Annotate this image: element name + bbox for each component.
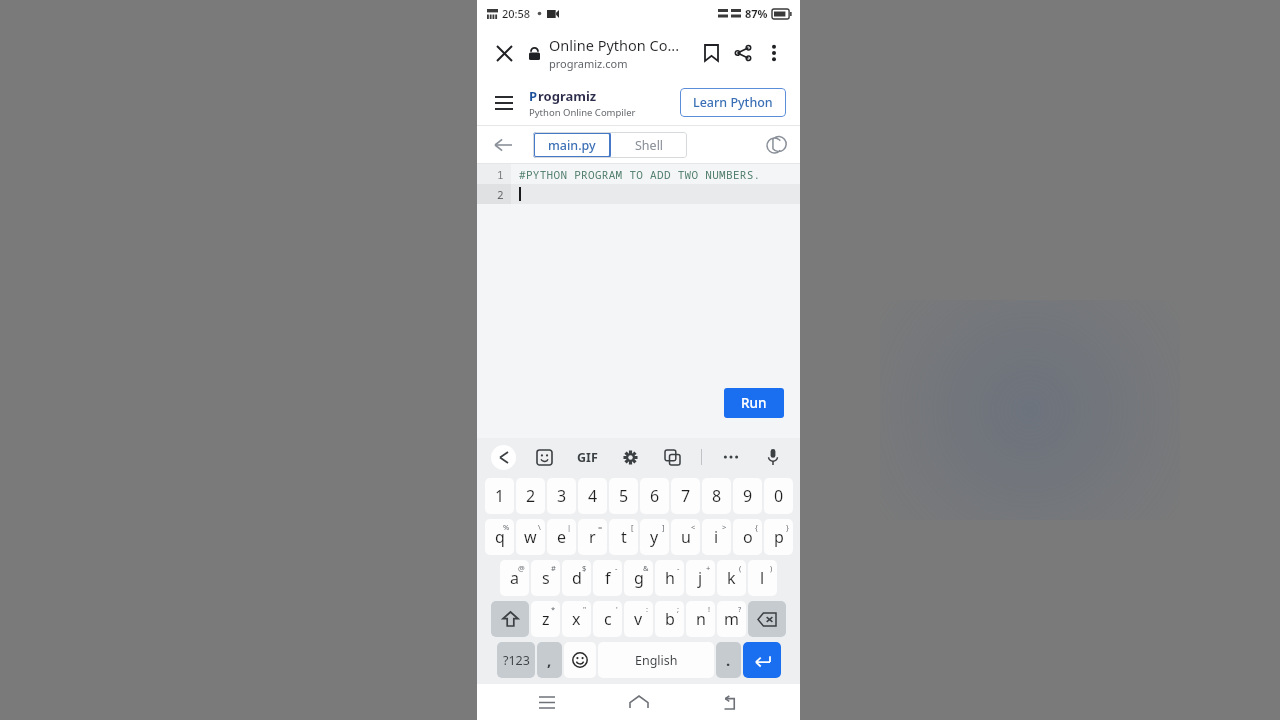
- staticText: @: [518, 563, 525, 573]
- staticText: 9: [743, 485, 753, 507]
- button[interactable]: c: [593, 601, 622, 637]
- button[interactable]: i: [702, 519, 731, 555]
- button[interactable]: Bookmark: [696, 38, 726, 68]
- button[interactable]: o: [733, 519, 762, 555]
- staticText: 6: [650, 485, 660, 507]
- button[interactable]: Stickers: [531, 444, 557, 470]
- button[interactable]: Shift: [491, 601, 529, 637]
- button[interactable]: Shell: [611, 132, 687, 158]
- staticText: Run: [741, 394, 767, 412]
- button[interactable]: English: [598, 642, 714, 678]
- staticText: b: [665, 608, 675, 630]
- button[interactable]: x: [562, 601, 591, 637]
- button[interactable]: m: [717, 601, 746, 637]
- staticText: #: [551, 563, 556, 573]
- staticText: h: [665, 567, 675, 589]
- button[interactable]: y: [640, 519, 669, 555]
- button[interactable]: 6: [640, 478, 669, 514]
- button[interactable]: 2: [516, 478, 545, 514]
- staticText: z: [542, 608, 550, 630]
- button[interactable]: Backspace: [748, 601, 786, 637]
- staticText: |: [567, 522, 572, 532]
- staticText: [: [631, 522, 634, 532]
- button[interactable]: More: [718, 444, 744, 470]
- button[interactable]: Dark mode: [760, 131, 788, 159]
- staticText: Shell: [635, 137, 664, 154]
- staticText: v: [634, 608, 643, 630]
- button[interactable]: d: [562, 560, 591, 596]
- button[interactable]: 8: [702, 478, 731, 514]
- staticText: g: [634, 567, 644, 589]
- button[interactable]: f: [593, 560, 622, 596]
- button[interactable]: h: [655, 560, 684, 596]
- staticText: ?: [738, 604, 742, 614]
- staticText: Learn Python: [693, 94, 773, 111]
- button[interactable]: Close: [489, 38, 519, 68]
- button[interactable]: Translate: [659, 444, 685, 470]
- button[interactable]: s: [531, 560, 560, 596]
- staticText: =: [598, 522, 603, 532]
- button[interactable]: p: [764, 519, 793, 555]
- staticText: *: [551, 604, 556, 614]
- button[interactable]: ?123: [497, 642, 535, 678]
- button[interactable]: e: [547, 519, 576, 555]
- staticText: p: [774, 526, 784, 548]
- button[interactable]: Settings: [617, 444, 643, 470]
- button[interactable]: main.py: [533, 132, 611, 158]
- button[interactable]: l: [748, 560, 777, 596]
- button[interactable]: z: [531, 601, 560, 637]
- staticText: ': [616, 604, 618, 614]
- button[interactable]: u: [671, 519, 700, 555]
- button[interactable]: k: [717, 560, 746, 596]
- button[interactable]: g: [624, 560, 653, 596]
- staticText: 1: [497, 167, 504, 182]
- button[interactable]: n: [686, 601, 715, 637]
- button[interactable]: 0: [764, 478, 793, 514]
- staticText: 7: [681, 485, 691, 507]
- button[interactable]: w: [516, 519, 545, 555]
- staticText: k: [727, 567, 736, 589]
- staticText: Online Python Co...: [549, 35, 680, 55]
- button[interactable]: 3: [547, 478, 576, 514]
- staticText: 0: [774, 485, 784, 507]
- button[interactable]: Share: [728, 38, 758, 68]
- staticText: 8: [712, 485, 722, 507]
- button[interactable]: ,: [537, 642, 562, 678]
- staticText: u: [681, 526, 691, 548]
- button[interactable]: Back: [709, 684, 751, 720]
- button[interactable]: b: [655, 601, 684, 637]
- button[interactable]: More options: [760, 39, 788, 67]
- button[interactable]: Back: [489, 131, 517, 159]
- button[interactable]: Emoji: [564, 642, 596, 678]
- button[interactable]: Home: [618, 684, 660, 720]
- button[interactable]: 1: [485, 478, 514, 514]
- button[interactable]: GIF: [572, 444, 602, 470]
- button[interactable]: Enter: [743, 642, 781, 678]
- button[interactable]: r: [578, 519, 607, 555]
- button[interactable]: Recent apps: [526, 684, 568, 720]
- button[interactable]: a: [500, 560, 529, 596]
- button[interactable]: t: [609, 519, 638, 555]
- button[interactable]: Run: [724, 388, 784, 418]
- staticText: l: [760, 567, 765, 589]
- staticText: n: [696, 608, 706, 630]
- button[interactable]: .: [716, 642, 741, 678]
- button[interactable]: Menu: [491, 90, 517, 116]
- button[interactable]: v: [624, 601, 653, 637]
- button[interactable]: 9: [733, 478, 762, 514]
- button[interactable]: Voice input: [760, 444, 786, 470]
- staticText: 4: [588, 485, 598, 507]
- button[interactable]: 4: [578, 478, 607, 514]
- button[interactable]: q: [485, 519, 514, 555]
- button[interactable]: Expand toolbar: [491, 445, 516, 470]
- staticText: P: [529, 87, 538, 105]
- staticText: r: [589, 526, 596, 548]
- button[interactable]: Learn Python: [680, 88, 786, 117]
- button[interactable]: 7: [671, 478, 700, 514]
- staticText: ]: [662, 522, 665, 532]
- staticText: a: [510, 567, 519, 589]
- button[interactable]: j: [686, 560, 715, 596]
- button[interactable]: 5: [609, 478, 638, 514]
- staticText: q: [495, 526, 505, 548]
- staticText: 2: [526, 485, 536, 507]
